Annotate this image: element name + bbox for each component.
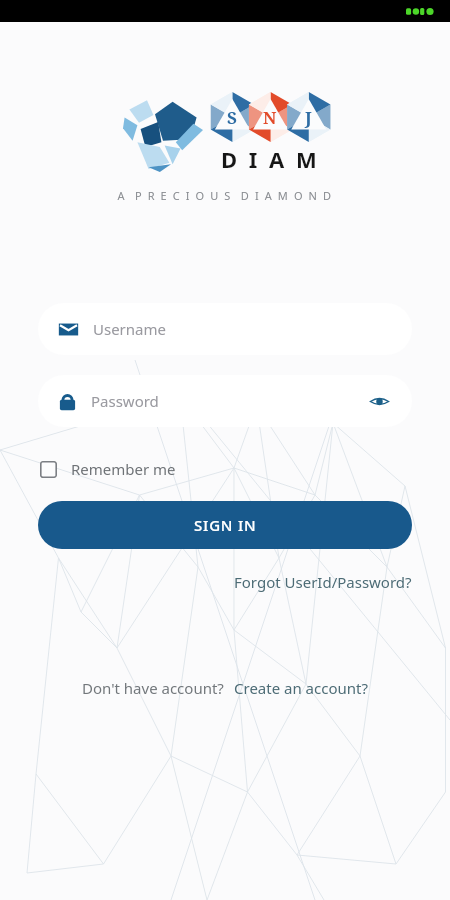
button[interactable]: Remember me <box>38 455 178 483</box>
staticText: Password <box>91 391 366 411</box>
other: Password <box>58 391 77 411</box>
staticText: Remember me <box>71 459 176 479</box>
staticText: Forgot UserId/Password? <box>234 572 412 592</box>
button[interactable]: Create an account? <box>234 675 368 701</box>
staticText: SIGN IN <box>194 515 257 535</box>
button[interactable]: Forgot UserId/Password? <box>234 569 412 595</box>
staticText: Don't have account? <box>82 678 224 698</box>
staticText: S <box>227 106 237 129</box>
staticText: Create an account? <box>234 678 368 698</box>
button[interactable]: Username <box>38 303 412 355</box>
other: Username <box>58 321 79 338</box>
staticText: Username <box>93 319 392 339</box>
button[interactable]: Show password <box>366 388 392 414</box>
button[interactable]: SIGN IN <box>38 501 412 549</box>
staticText: N <box>263 106 277 129</box>
button[interactable]: Password <box>38 375 412 427</box>
staticText: A P R E C I O U S D I A M O N D <box>117 188 333 203</box>
staticText: D I A M <box>221 144 320 174</box>
staticText: J <box>305 106 312 129</box>
